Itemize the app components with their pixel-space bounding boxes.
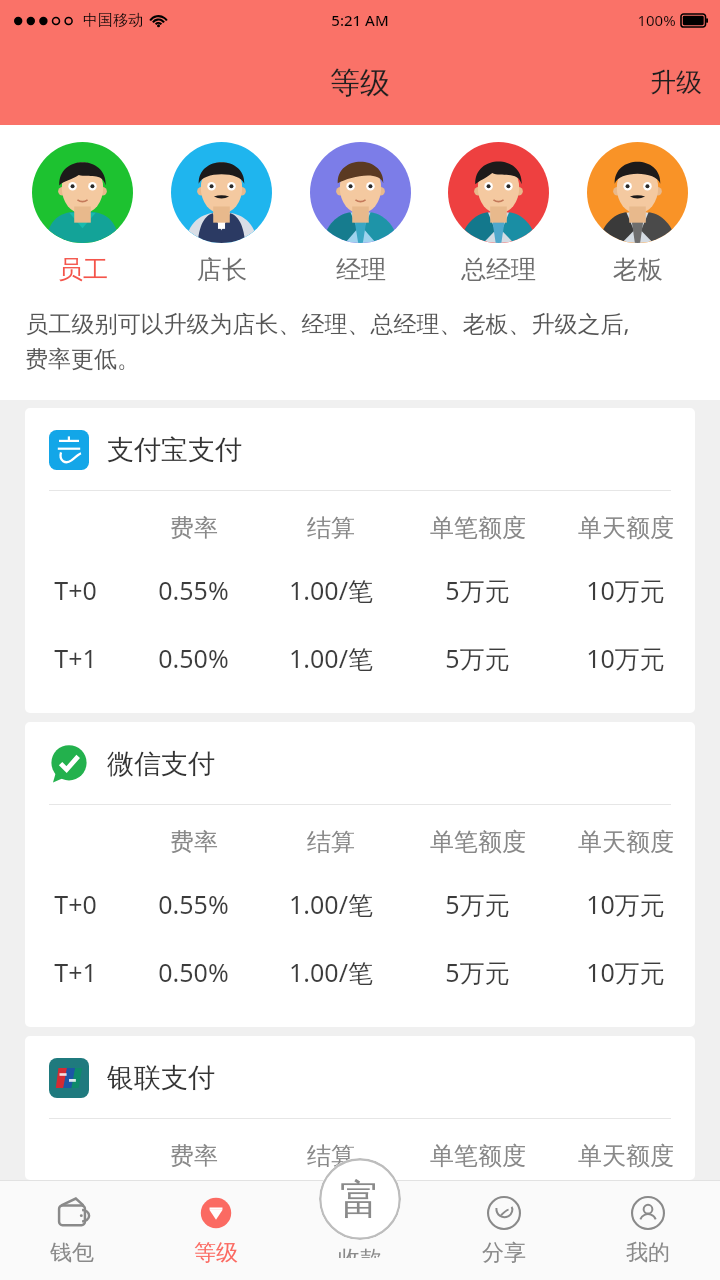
staticText: 收款	[338, 1245, 382, 1258]
staticText: 钱包	[50, 1239, 94, 1267]
staticText: 员工	[58, 254, 108, 285]
staticText: 0.55%	[158, 573, 229, 607]
staticText: T+1	[54, 955, 97, 989]
staticText: 老板	[613, 254, 663, 285]
staticText: T+0	[54, 887, 97, 921]
staticText: 5万元	[445, 955, 510, 989]
staticText: 1.00/笔	[289, 955, 373, 989]
staticText: 费率	[170, 827, 218, 857]
staticText: 经理	[336, 254, 386, 285]
button[interactable]: 员工	[26, 142, 139, 285]
staticText: T+1	[54, 641, 97, 675]
staticText: 1.00/笔	[289, 641, 373, 675]
button[interactable]: 分享	[432, 1180, 576, 1280]
staticText: 0.50%	[158, 955, 229, 989]
staticText: 单天额度	[578, 513, 674, 543]
staticText: 单笔额度	[430, 1141, 526, 1171]
staticText: 等级	[194, 1239, 238, 1267]
staticText: 结算	[307, 827, 355, 857]
staticText: 1.00/笔	[289, 573, 373, 607]
staticText: 100%	[637, 10, 676, 30]
button[interactable]: 等级	[320, 60, 400, 106]
button[interactable]: 支付宝支付	[25, 408, 695, 713]
staticText: 5万元	[445, 641, 510, 675]
button[interactable]: 老板	[581, 142, 694, 285]
staticText: 10万元	[586, 955, 665, 989]
staticText: 支付宝支付	[107, 433, 242, 467]
staticText: 费率	[170, 513, 218, 543]
staticText: 5万元	[445, 887, 510, 921]
staticText: 总经理	[461, 254, 536, 285]
button[interactable]: 升级	[632, 58, 720, 107]
staticText: 中国移动	[83, 11, 143, 30]
staticText: 5万元	[445, 573, 510, 607]
staticText: 结算	[307, 513, 355, 543]
button[interactable]: 经理	[304, 142, 417, 285]
staticText: 单笔额度	[430, 827, 526, 857]
staticText: 员工级别可以升级为店长、经理、总经理、老板、升级之后,	[25, 307, 630, 338]
button[interactable]: 收款	[319, 1158, 401, 1258]
staticText: 单天额度	[578, 1141, 674, 1171]
staticText: T+0	[54, 573, 97, 607]
staticText: 升级	[650, 66, 702, 99]
button[interactable]: 银联支付	[25, 1036, 695, 1180]
staticText: 10万元	[586, 573, 665, 607]
staticText: 10万元	[586, 887, 665, 921]
staticText: 0.50%	[158, 641, 229, 675]
staticText: 微信支付	[107, 747, 215, 781]
button[interactable]: 总经理	[442, 142, 555, 285]
staticText: 分享	[482, 1239, 526, 1267]
button[interactable]: 店长	[165, 142, 278, 285]
staticText: 等级	[330, 64, 390, 102]
staticText: 富	[340, 1174, 380, 1224]
button[interactable]: 微信支付	[25, 722, 695, 1027]
staticText: 我的	[626, 1239, 670, 1267]
button[interactable]: 我的	[576, 1180, 720, 1280]
staticText: 0.55%	[158, 887, 229, 921]
staticText: 店长	[197, 254, 247, 285]
button[interactable]: 等级	[144, 1180, 288, 1280]
staticText: 费率更低。	[25, 345, 140, 374]
button[interactable]: 钱包	[0, 1180, 144, 1280]
staticText: 1.00/笔	[289, 887, 373, 921]
staticText: 单笔额度	[430, 513, 526, 543]
staticText: 5:21 AM	[331, 10, 389, 30]
staticText: 结算	[307, 1141, 355, 1171]
staticText: 银联支付	[107, 1061, 215, 1095]
staticText: 费率	[170, 1141, 218, 1171]
staticText: 10万元	[586, 641, 665, 675]
staticText: 单天额度	[578, 827, 674, 857]
